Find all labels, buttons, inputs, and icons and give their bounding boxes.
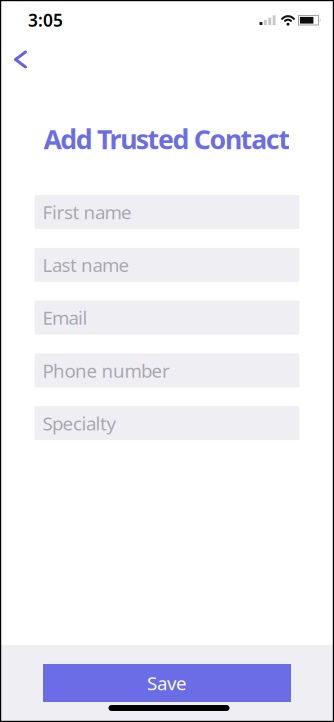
staticText: Specialty (42, 411, 116, 436)
staticText: Last name (42, 252, 129, 277)
staticText: Save (147, 671, 187, 695)
button[interactable]: Back (0, 50, 27, 68)
button[interactable]: Save (43, 664, 291, 702)
staticText: Phone number (42, 358, 170, 383)
staticText: 3:05 (28, 8, 63, 31)
staticText: First name (42, 200, 132, 224)
staticText: Email (42, 305, 87, 330)
staticText: Add Trusted Contact (44, 121, 290, 157)
